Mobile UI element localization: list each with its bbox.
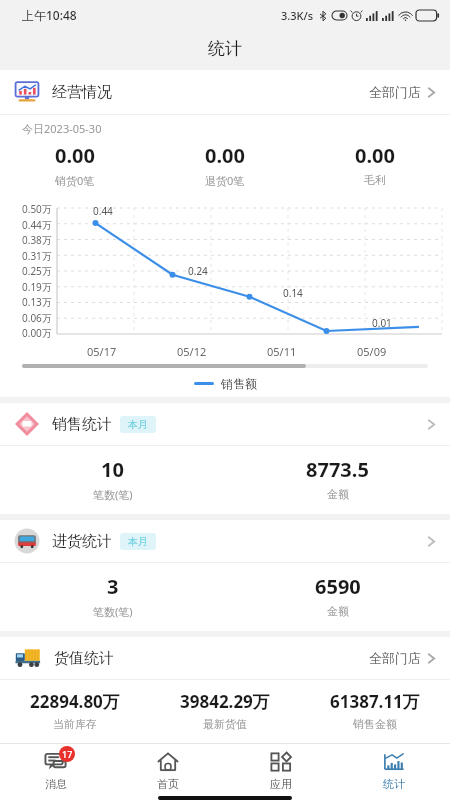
button[interactable]: 应用	[224, 744, 337, 796]
staticText: 当前库存	[53, 717, 97, 731]
staticText: 05/11	[267, 344, 297, 359]
staticText: 本月	[128, 418, 148, 431]
staticText: 17	[62, 748, 73, 760]
button[interactable]: 17	[0, 744, 112, 796]
staticText: 0.44万	[22, 218, 52, 232]
staticText: 8773.5	[306, 456, 369, 483]
staticText: 0.14	[283, 286, 303, 300]
staticText: 0.50万	[22, 202, 52, 216]
button[interactable]: 销售统计	[0, 403, 450, 445]
staticText: 统计	[383, 777, 405, 791]
button[interactable]: 首页	[112, 744, 224, 796]
staticText: 笔数(笔)	[93, 487, 133, 502]
staticText: 05/09	[357, 344, 387, 359]
staticText: 0.00	[355, 142, 395, 169]
staticText: 最新货值	[203, 717, 247, 731]
staticText: 0.00	[205, 142, 245, 169]
staticText: 0.31万	[22, 249, 52, 263]
staticText: 0.24	[188, 264, 208, 278]
staticText: 0.44	[93, 204, 113, 218]
staticText: 3.3K/s	[281, 8, 314, 23]
staticText: 消息	[45, 777, 67, 791]
staticText: 进货统计	[52, 532, 112, 551]
staticText: 05/12	[177, 344, 207, 359]
staticText: 0.06万	[22, 311, 52, 325]
staticText: 本月	[128, 535, 148, 548]
button[interactable]: 经营情况	[0, 70, 450, 114]
staticText: 销售统计	[52, 415, 112, 434]
staticText: 05/17	[87, 344, 117, 359]
staticText: 销售额	[221, 376, 257, 391]
staticText: 0.38万	[22, 233, 52, 247]
staticText: 0.13万	[22, 295, 52, 309]
staticText: 退货0笔	[205, 173, 245, 188]
staticText: 0.00	[55, 142, 95, 169]
staticText: 货值统计	[54, 649, 114, 668]
staticText: 上午10:48	[22, 7, 77, 23]
staticText: 销货0笔	[55, 173, 95, 188]
staticText: 61387.11万	[330, 690, 420, 713]
staticText: 销售金额	[353, 717, 397, 731]
staticText: 经营情况	[52, 83, 112, 102]
staticText: 首页	[157, 777, 179, 791]
staticText: 毛利	[364, 173, 386, 187]
staticText: 10	[101, 456, 124, 483]
button[interactable]: 统计	[337, 744, 450, 796]
staticText: 应用	[270, 777, 292, 791]
staticText: 22894.80万	[30, 690, 120, 713]
button[interactable]: 进货统计	[0, 520, 450, 562]
staticText: 笔数(笔)	[93, 604, 133, 619]
staticText: 金额	[327, 604, 349, 618]
staticText: 0.01	[372, 316, 392, 330]
staticText: 6590	[315, 573, 361, 600]
staticText: 3	[107, 573, 119, 600]
staticText: 今日2023-05-30	[22, 121, 102, 136]
button[interactable]: 货值统计	[0, 637, 450, 679]
staticText: 0.25万	[22, 264, 52, 278]
staticText: 金额	[327, 487, 349, 501]
staticText: 全部门店	[369, 84, 421, 100]
staticText: 0.19万	[22, 280, 52, 294]
staticText: 全部门店	[369, 650, 421, 666]
staticText: 39842.29万	[180, 690, 270, 713]
staticText: 0.00万	[22, 326, 52, 340]
staticText: 统计	[208, 38, 242, 59]
